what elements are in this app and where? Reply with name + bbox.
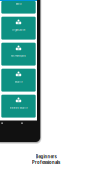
button[interactable]: Security (1, 69, 36, 92)
staticText: Beginners (35, 154, 56, 159)
staticText: Basics (15, 3, 21, 5)
button[interactable]: Organization (1, 17, 36, 40)
staticText: MS Powerpoint (11, 55, 26, 57)
staticText: Professionals (32, 160, 60, 165)
button[interactable]: Network Security (1, 95, 36, 118)
staticText: Network Security (9, 107, 27, 109)
button[interactable]: MS Powerpoint (1, 43, 36, 66)
staticText: Security (14, 81, 22, 83)
button[interactable]: Basics (1, 1, 36, 14)
staticText: Organization (12, 29, 25, 31)
